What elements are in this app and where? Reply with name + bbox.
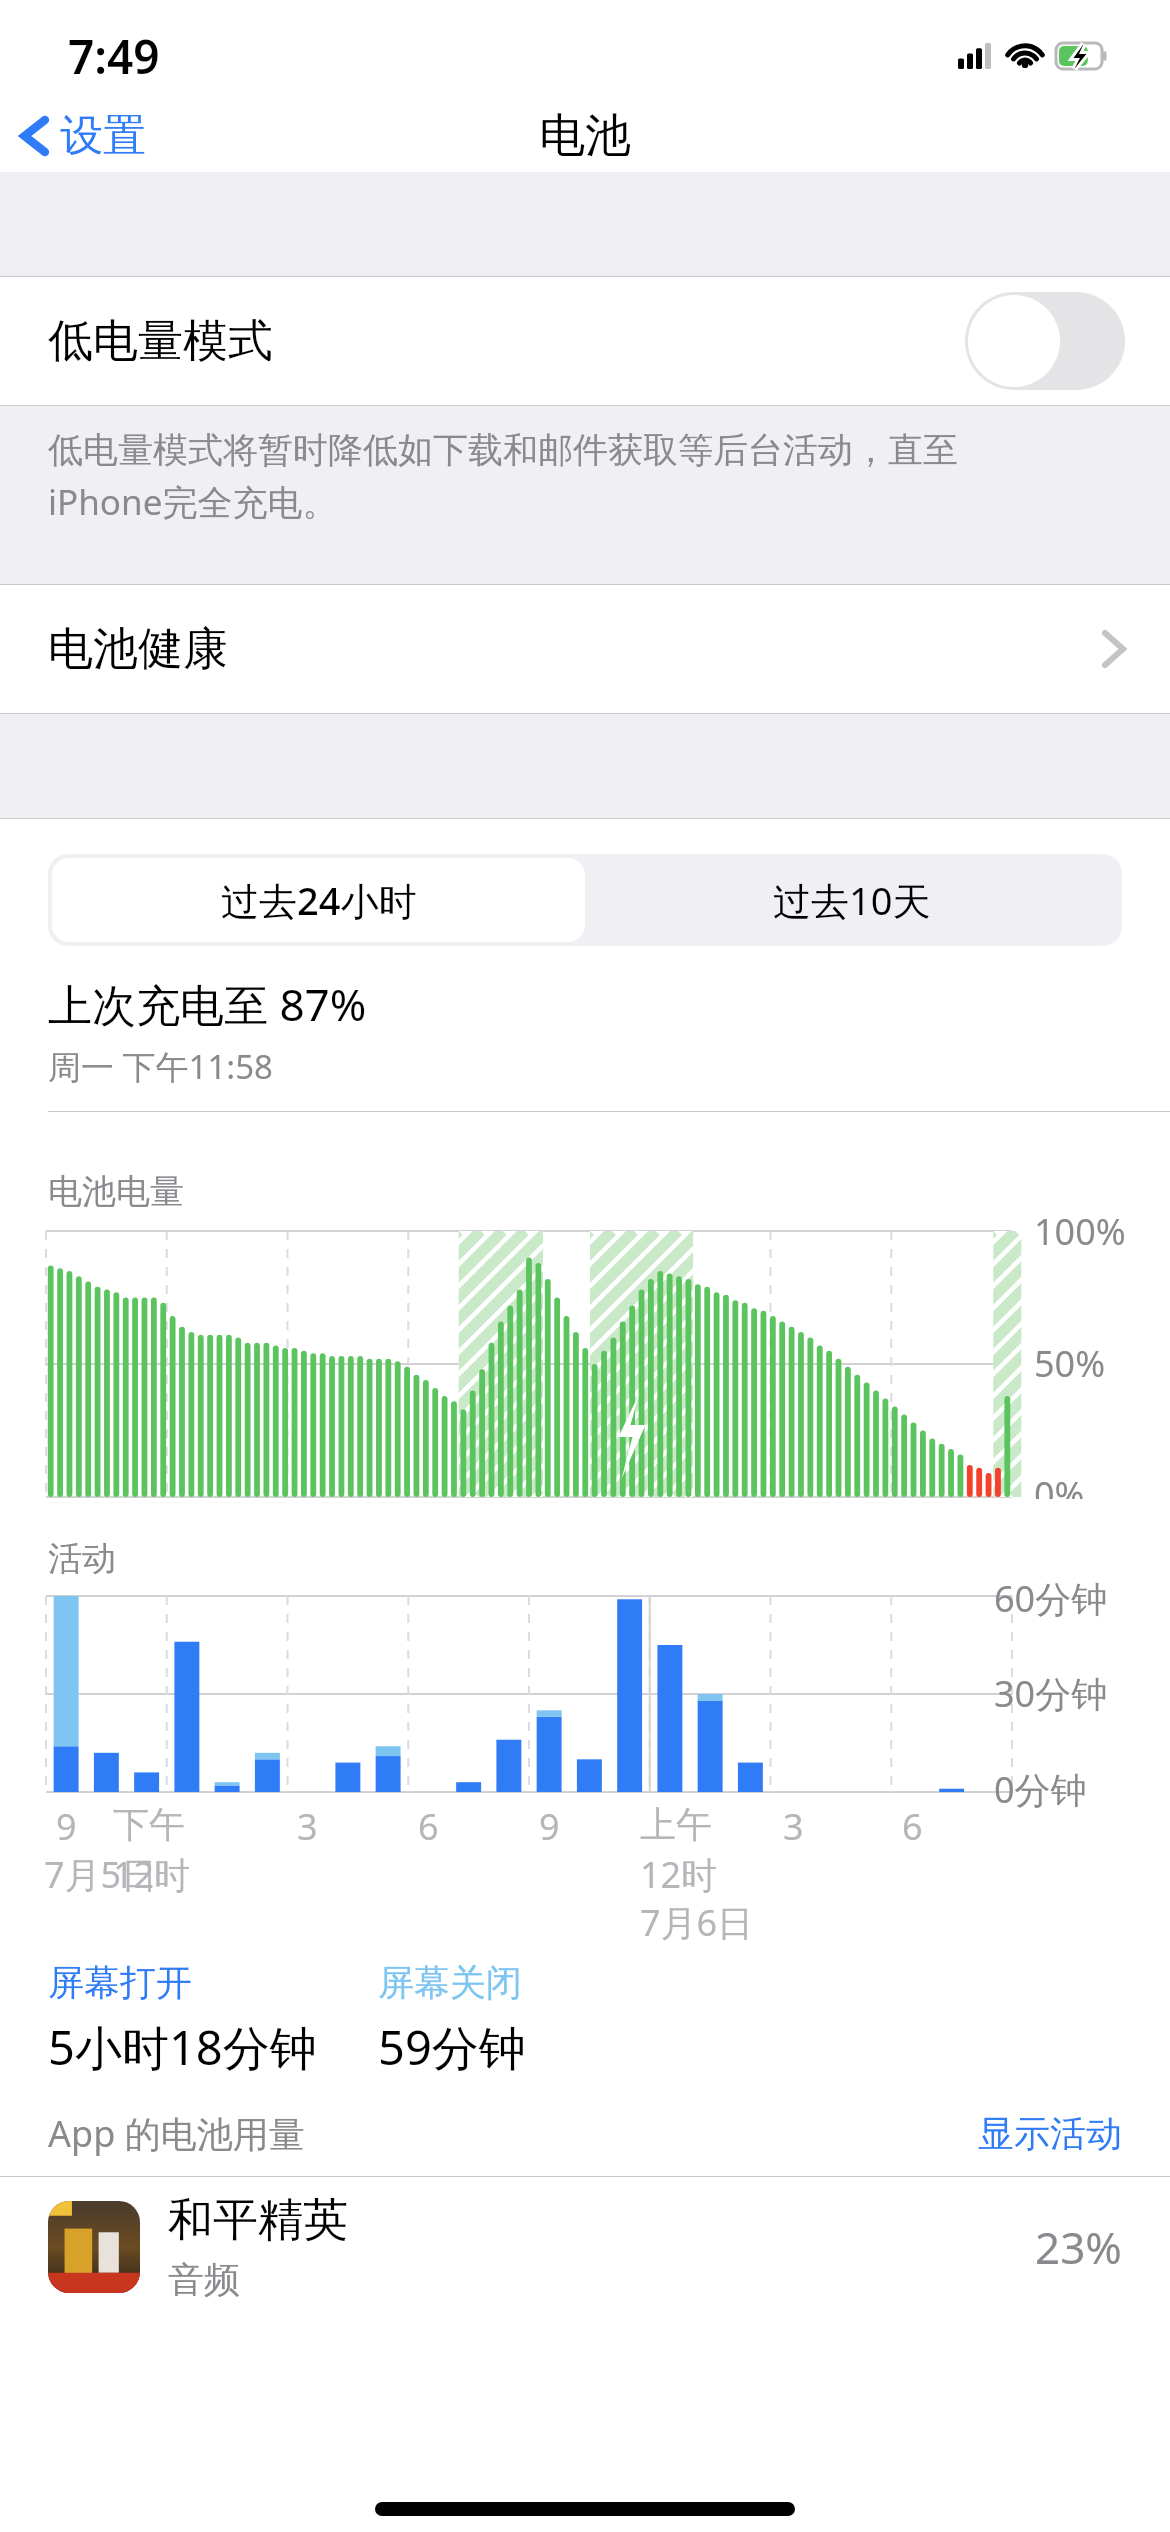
button[interactable]: 和平精英	[0, 2177, 1170, 2317]
staticText: 电池电量	[48, 1170, 184, 1213]
staticText: 0%	[1034, 1470, 1085, 1519]
staticText: 低电量模式将暂时降低如下载和邮件获取等后台活动，直至	[48, 428, 958, 472]
staticText: 下午	[113, 1802, 185, 1847]
staticText: 周一 下午11:58	[48, 1044, 273, 1089]
button[interactable]: 显示活动	[978, 2111, 1122, 2156]
staticText: 上午	[640, 1802, 712, 1847]
staticText: 30分钟	[994, 1669, 1108, 1718]
staticText: 9	[539, 1802, 560, 1851]
staticText: 过去10天	[773, 874, 931, 926]
button[interactable]: 电池健康	[0, 585, 1170, 713]
staticText: iPhone完全充电。	[48, 478, 338, 526]
button[interactable]: 过去24小时	[52, 858, 585, 942]
staticText: 和平精英	[168, 2192, 348, 2249]
staticText: 12时	[640, 1850, 718, 1899]
staticText: 屏幕打开	[48, 1960, 192, 2005]
staticText: 音频	[168, 2257, 240, 2302]
staticText: 7:49	[68, 25, 160, 88]
staticText: 60分钟	[994, 1574, 1108, 1623]
button[interactable]: Low Power Mode toggle	[965, 292, 1125, 390]
staticText: 0分钟	[994, 1765, 1087, 1814]
staticText: 活动	[48, 1537, 116, 1580]
button[interactable]: 过去10天	[585, 858, 1118, 942]
staticText: 50%	[1034, 1339, 1106, 1388]
staticText: 过去24小时	[221, 874, 417, 926]
staticText: 7月6日	[640, 1898, 754, 1947]
button[interactable]: 设置	[0, 103, 164, 169]
button[interactable]: 低电量模式	[0, 277, 1170, 405]
staticText: 设置	[60, 109, 146, 163]
staticText: 6	[418, 1802, 439, 1851]
staticText: 100%	[1034, 1207, 1126, 1256]
staticText: 显示活动	[978, 2111, 1122, 2156]
staticText: 9	[56, 1802, 77, 1851]
staticText: 电池健康	[48, 621, 228, 678]
staticText: 23%	[1035, 2217, 1122, 2277]
staticText: 6	[902, 1802, 923, 1851]
staticText: 屏幕关闭	[378, 1960, 522, 2005]
staticText: App 的电池用量	[48, 2109, 305, 2158]
staticText: 3	[297, 1802, 318, 1851]
staticText: 7月5日	[44, 1850, 158, 1899]
staticText: 上次充电至 87%	[48, 974, 367, 1034]
staticText: 59分钟	[378, 2015, 526, 2079]
staticText: 3	[783, 1802, 804, 1851]
staticText: 12时	[113, 1850, 191, 1899]
staticText: 5小时18分钟	[48, 2015, 317, 2079]
staticText: 电池	[539, 107, 631, 165]
staticText: 低电量模式	[48, 313, 273, 370]
